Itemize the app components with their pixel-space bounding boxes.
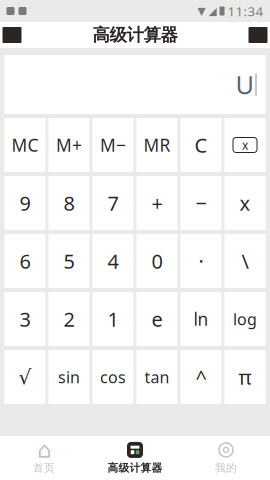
button[interactable]: Back xyxy=(0,27,21,43)
staticText: π xyxy=(238,364,251,390)
button[interactable]: 3 xyxy=(4,292,45,346)
staticText: sin xyxy=(58,366,80,388)
button[interactable]: MR xyxy=(136,118,177,172)
button[interactable]: x xyxy=(224,176,265,230)
staticText: − xyxy=(195,190,206,216)
staticText: e xyxy=(151,306,162,332)
button[interactable]: 2 xyxy=(48,292,89,346)
staticText: 6 xyxy=(19,248,30,274)
button[interactable]: − xyxy=(180,176,221,230)
button[interactable]: Power xyxy=(180,350,221,404)
staticText: 高级计算器 xyxy=(107,461,162,474)
staticText: ^ xyxy=(195,364,206,390)
button[interactable]: 0 xyxy=(136,234,177,288)
button[interactable]: Square root xyxy=(4,350,45,404)
button[interactable]: sin xyxy=(48,350,89,404)
button[interactable]: More xyxy=(248,27,270,43)
button[interactable]: 1 xyxy=(92,292,133,346)
button[interactable]: 9 xyxy=(4,176,45,230)
staticText: U xyxy=(235,68,254,101)
staticText: MC xyxy=(11,133,38,156)
button[interactable]: MC xyxy=(4,118,45,172)
button[interactable]: ⌂ xyxy=(0,436,89,480)
button[interactable]: 5 xyxy=(48,234,89,288)
staticText: + xyxy=(151,190,162,216)
staticText: M− xyxy=(100,133,126,156)
staticText: · xyxy=(198,248,203,274)
staticText: 首页 xyxy=(33,461,55,474)
button[interactable]: Divide xyxy=(224,234,265,288)
staticText: 5 xyxy=(63,248,74,274)
staticText: ▼ xyxy=(197,5,205,17)
staticText: tan xyxy=(144,366,169,388)
button[interactable]: e xyxy=(136,292,177,346)
staticText: √ xyxy=(18,366,31,388)
staticText: 我的 xyxy=(215,461,237,474)
button[interactable]: cos xyxy=(92,350,133,404)
button[interactable]: log xyxy=(224,292,265,346)
staticText: cos xyxy=(100,366,126,388)
button[interactable]: 7 xyxy=(92,176,133,230)
staticText: 3 xyxy=(19,306,30,332)
button[interactable]: C xyxy=(180,118,221,172)
button[interactable]: tan xyxy=(136,350,177,404)
button[interactable]: 4 xyxy=(92,234,133,288)
staticText: M+ xyxy=(56,133,82,156)
button[interactable]: M+ xyxy=(48,118,89,172)
staticText: x xyxy=(239,190,250,216)
staticText: 8 xyxy=(63,190,74,216)
button[interactable]: M− xyxy=(92,118,133,172)
button[interactable]: Decimal point xyxy=(180,234,221,288)
button[interactable]: ln xyxy=(180,292,221,346)
staticText: ⌂ xyxy=(37,437,51,463)
staticText: 7 xyxy=(107,190,118,216)
staticText: MR xyxy=(143,133,170,156)
staticText: 0 xyxy=(151,248,162,274)
staticText: 11:34 xyxy=(227,2,263,20)
staticText: ln xyxy=(193,307,208,330)
button[interactable]: 6 xyxy=(4,234,45,288)
button[interactable]: 高级计算器 xyxy=(89,436,180,480)
staticText: 9 xyxy=(19,190,30,216)
staticText: ◢ xyxy=(208,5,216,17)
staticText: x xyxy=(242,137,248,153)
staticText: 4 xyxy=(107,248,118,274)
button[interactable]: Pi xyxy=(224,350,265,404)
button[interactable]: Backspace xyxy=(224,118,265,172)
button[interactable]: 8 xyxy=(48,176,89,230)
staticText: 1 xyxy=(107,306,118,332)
staticText: 高级计算器 xyxy=(92,24,177,46)
button[interactable]: 我的 xyxy=(180,436,270,480)
staticText: \ xyxy=(241,248,248,274)
staticText: log xyxy=(233,308,257,330)
staticText: C xyxy=(194,132,207,158)
staticText: 2 xyxy=(63,306,74,332)
button[interactable]: + xyxy=(136,176,177,230)
